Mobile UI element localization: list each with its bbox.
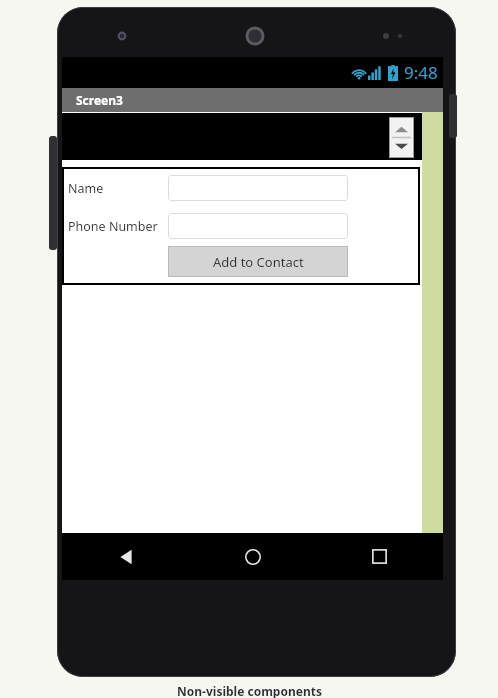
button[interactable]: Back [62, 533, 189, 580]
staticText: Name [68, 180, 104, 197]
staticText: Non-visible components [177, 683, 322, 698]
button[interactable]: Recents [316, 533, 443, 580]
button[interactable] [168, 175, 348, 201]
button[interactable]: Add to Contact [168, 246, 348, 277]
button[interactable]: Home [189, 533, 316, 580]
other: Volume [49, 136, 57, 250]
button[interactable] [168, 213, 348, 239]
other: Power [449, 94, 457, 138]
staticText: Add to Contact [213, 253, 304, 271]
staticText: Phone Number [68, 218, 158, 235]
staticText: 9:48 [404, 61, 438, 84]
button[interactable]: Scroll [389, 117, 414, 158]
staticText: Screen3 [76, 92, 123, 108]
